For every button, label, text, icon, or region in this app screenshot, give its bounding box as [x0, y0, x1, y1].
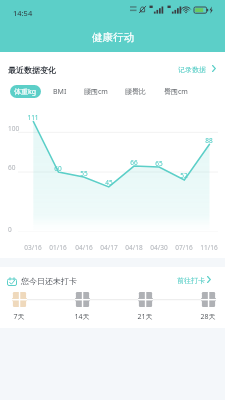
- staticText: 腰臀比: [125, 87, 146, 96]
- staticText: 60: [48, 164, 68, 173]
- staticText: 03/16: [21, 243, 45, 252]
- button[interactable]: 21天: [131, 292, 159, 322]
- staticText: 11/16: [197, 243, 221, 252]
- button[interactable]: 28天: [194, 292, 222, 322]
- staticText: 7天: [13, 312, 25, 322]
- button[interactable]: 7天: [5, 292, 33, 322]
- button[interactable]: 14天: [68, 292, 96, 322]
- button[interactable]: 记录数据: [174, 60, 220, 78]
- staticText: 111: [23, 113, 43, 122]
- button[interactable]: 您今日还未打卡: [7, 276, 77, 286]
- button[interactable]: BMI: [51, 85, 69, 98]
- staticText: 14:54: [13, 8, 33, 18]
- staticText: 21天: [137, 312, 153, 322]
- staticText: 52: [174, 171, 194, 180]
- button[interactable]: 体重kg: [10, 85, 41, 98]
- button[interactable]: 腰臀比: [122, 85, 148, 98]
- staticText: 04/16: [72, 243, 96, 252]
- staticText: 健康行动: [92, 31, 134, 44]
- button[interactable]: 臀围cm: [159, 85, 192, 98]
- staticText: 65: [149, 159, 169, 168]
- staticText: 04/30: [147, 243, 171, 252]
- staticText: 腰围cm: [84, 87, 108, 97]
- staticText: 01/16: [46, 243, 70, 252]
- staticText: 14天: [74, 312, 90, 322]
- staticText: 04/18: [122, 243, 146, 252]
- staticText: BMI: [53, 87, 67, 97]
- staticText: 60: [8, 163, 16, 172]
- staticText: 07/16: [172, 243, 196, 252]
- staticText: 体重kg: [14, 87, 37, 97]
- staticText: 0: [8, 225, 12, 234]
- staticText: 前往打卡: [177, 276, 205, 285]
- staticText: 臀围cm: [164, 87, 188, 97]
- button[interactable]: 前往打卡: [172, 271, 220, 289]
- staticText: 28天: [200, 312, 216, 322]
- staticText: 记录数据: [178, 65, 206, 74]
- staticText: 您今日还未打卡: [21, 276, 77, 286]
- staticText: 100: [8, 124, 20, 133]
- staticText: 88: [199, 136, 219, 145]
- staticText: 最近数据变化: [8, 65, 56, 75]
- staticText: 45: [99, 178, 119, 187]
- staticText: 04/17: [97, 243, 121, 252]
- staticText: 66: [124, 158, 144, 167]
- staticText: 55: [74, 169, 94, 178]
- button[interactable]: 腰围cm: [79, 85, 112, 98]
